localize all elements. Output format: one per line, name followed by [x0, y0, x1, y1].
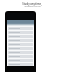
button[interactable]	[8, 43, 33, 46]
button[interactable]	[8, 51, 33, 54]
button[interactable]	[8, 31, 33, 34]
button[interactable]	[8, 35, 33, 38]
button[interactable]	[8, 63, 33, 66]
button[interactable]	[8, 39, 33, 42]
button[interactable]	[8, 47, 33, 50]
button[interactable]	[8, 55, 33, 58]
staticText: Study anytime,	[22, 2, 42, 6]
button[interactable]	[8, 59, 33, 62]
staticText: anywhere you go	[24, 5, 41, 8]
button[interactable]	[8, 27, 33, 30]
